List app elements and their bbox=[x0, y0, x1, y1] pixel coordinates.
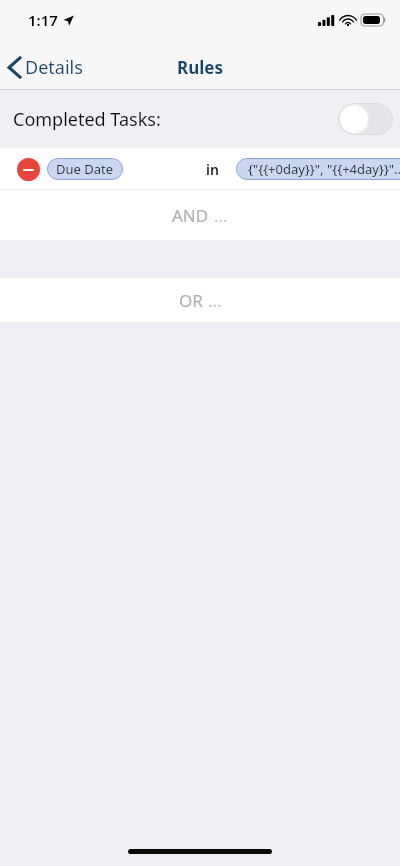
button[interactable]: Remove condition bbox=[17, 158, 40, 181]
button[interactable]: Remove condition bbox=[0, 148, 400, 190]
button[interactable]: {"{{+0day}}", "{{+4day}}"… bbox=[236, 158, 400, 180]
staticText: Details bbox=[25, 55, 83, 80]
staticText: in bbox=[206, 160, 219, 179]
button[interactable]: Details bbox=[0, 44, 93, 90]
staticText: Due Date bbox=[56, 160, 114, 178]
staticText: ... bbox=[208, 289, 222, 312]
staticText: {"{{+0day}}", "{{+4day}}"… bbox=[248, 160, 400, 178]
button[interactable]: Completed Tasks: bbox=[0, 90, 400, 148]
staticText: OR bbox=[179, 289, 203, 312]
button[interactable]: Completed Tasks toggle bbox=[338, 103, 393, 135]
button[interactable]: Due Date bbox=[47, 158, 123, 180]
staticText: ... bbox=[214, 204, 228, 227]
staticText: AND bbox=[172, 204, 209, 227]
staticText: Rules bbox=[177, 56, 223, 79]
staticText: Completed Tasks: bbox=[13, 107, 161, 132]
staticText: 1:17 bbox=[28, 10, 58, 30]
button[interactable]: OR bbox=[0, 278, 400, 322]
button[interactable]: AND bbox=[0, 190, 400, 240]
